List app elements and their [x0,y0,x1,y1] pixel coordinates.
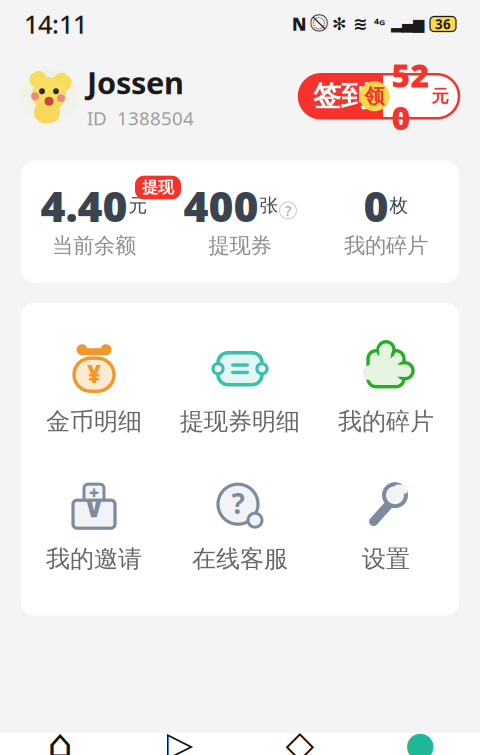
button[interactable]: 首页 [0,721,120,755]
staticText: ✻ [332,14,347,34]
staticText: 元 [128,194,147,217]
staticText: 设置 [362,544,410,574]
staticText: ¥ [87,358,101,390]
button[interactable]: ? [167,474,313,582]
staticText: 4.40 [40,177,127,234]
button[interactable]: + [21,474,167,582]
staticText: ⌂ [47,721,72,755]
staticText: 提现券明细 [180,407,300,436]
staticText: ≋ [353,14,368,34]
staticText: 当前余额 [52,232,136,259]
staticText: 0 [363,177,388,234]
staticText: 枚 [389,194,408,217]
staticText: 在线客服 [192,544,288,574]
staticText: N [292,12,306,35]
staticText: ∨ [82,491,106,524]
staticText: + [89,481,99,504]
staticText: ◇ [285,723,314,755]
button[interactable]: 我的碎片 [313,337,459,444]
staticText: 14:11 [24,7,87,41]
button[interactable]: 设置 [313,474,459,582]
staticText: 我的邀请 [46,544,142,574]
button[interactable]: 提现券明细 [167,337,313,444]
staticText: ID 1388504 [87,106,194,130]
staticText: 张 [259,194,278,217]
button[interactable]: Jossen [21,62,194,130]
staticText: 提现券 [208,232,271,259]
staticText: 我的碎片 [338,407,434,436]
staticText: 金币明细 [46,407,142,436]
staticText: 我的碎片 [344,232,428,259]
staticText: ● [405,724,435,755]
staticText: 36 [435,15,451,33]
button[interactable]: 任务 [240,723,360,755]
staticText: 领 [364,84,384,109]
staticText: 400 [183,177,258,234]
staticText: ⃠ [312,15,326,32]
staticText: 520 [391,54,429,139]
staticText: ? [285,201,291,220]
staticText: ? [231,485,244,522]
button[interactable]: 我的 [360,724,480,755]
staticText: Jossen [87,62,184,103]
staticText: 元 [431,86,448,107]
button[interactable]: 签到领520元 [299,74,459,118]
staticText: 提现 [142,178,174,197]
staticText: 签到 [313,79,369,113]
staticText: ⁴ᴳ [374,15,385,33]
button[interactable]: 视频 [120,724,240,755]
button[interactable]: ¥ [21,337,167,444]
staticText: ▂▄▆ [391,16,424,32]
staticText: ▷ [166,724,193,755]
